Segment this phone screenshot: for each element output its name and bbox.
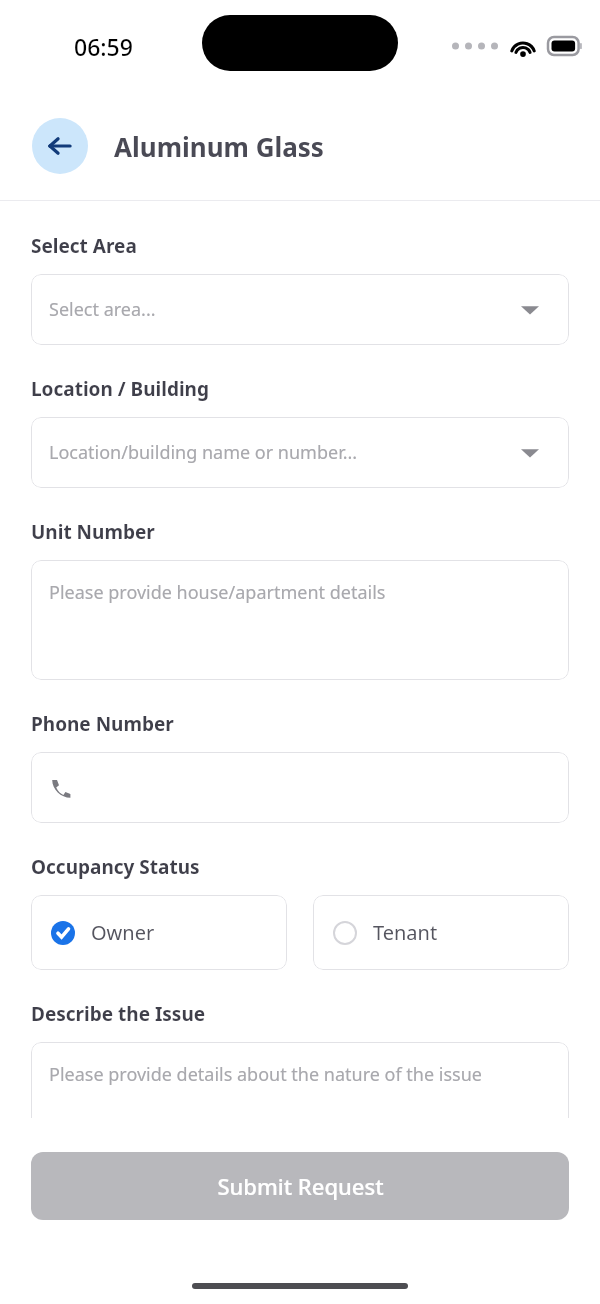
staticText: Please provide details about the nature … xyxy=(49,1062,482,1087)
button[interactable]: Location/building name or number... xyxy=(31,417,569,488)
button[interactable]: Back xyxy=(32,118,88,174)
staticText: Location/building name or number... xyxy=(49,440,358,465)
staticText: Aluminum Glass xyxy=(114,129,324,164)
button[interactable] xyxy=(31,752,569,823)
button[interactable]: Please provide house/apartment details xyxy=(31,560,569,680)
staticText: Select Area xyxy=(31,233,137,259)
staticText: Occupancy Status xyxy=(31,854,200,880)
button[interactable]: Tenant xyxy=(313,895,569,970)
button[interactable]: Please provide details about the nature … xyxy=(31,1042,569,1162)
button[interactable]: Owner xyxy=(31,895,287,970)
staticText: Tenant xyxy=(373,919,438,946)
staticText: Phone Number xyxy=(31,711,174,737)
button[interactable]: Submit Request xyxy=(31,1152,569,1220)
staticText: Owner xyxy=(91,919,155,946)
staticText: Please provide house/apartment details xyxy=(49,580,386,605)
staticText: 06:59 xyxy=(74,31,133,62)
staticText: Select area... xyxy=(49,297,156,322)
staticText: Location / Building xyxy=(31,376,209,402)
staticText: Unit Number xyxy=(31,519,155,545)
staticText: Describe the Issue xyxy=(31,1001,206,1027)
staticText: Submit Request xyxy=(217,1171,384,1201)
button[interactable]: Select area... xyxy=(31,274,569,345)
